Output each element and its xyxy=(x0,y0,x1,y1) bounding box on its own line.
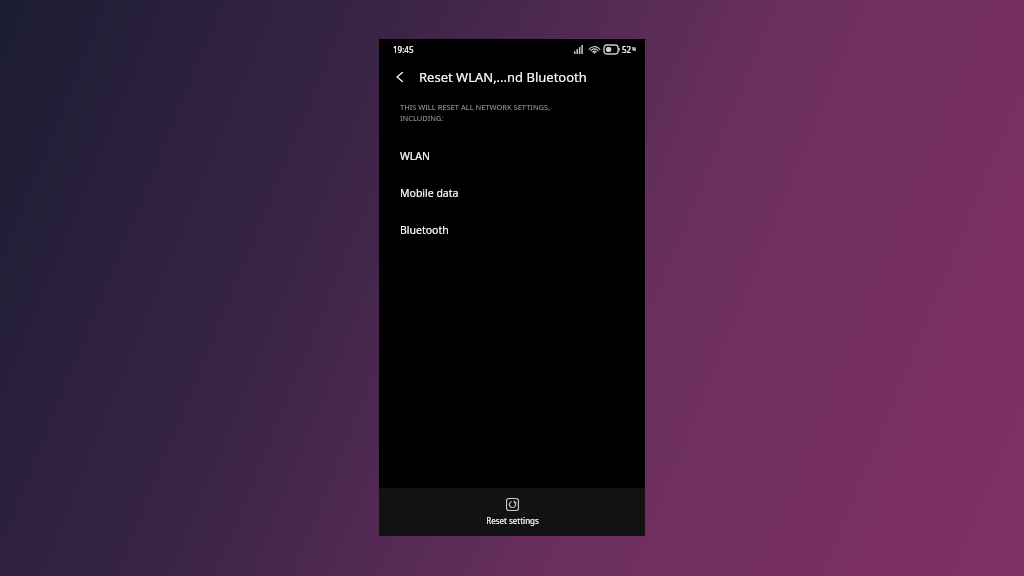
button[interactable]: Bluetooth xyxy=(379,211,645,248)
staticText: Bluetooth xyxy=(400,223,449,237)
staticText: THIS WILL RESET ALL NETWORK SETTINGS, IN… xyxy=(400,102,551,123)
staticText: 19:45 xyxy=(393,44,414,55)
staticText: 52 xyxy=(622,44,632,55)
staticText: Reset WLAN,...nd Bluetooth xyxy=(419,68,587,86)
staticText: Reset settings xyxy=(486,515,539,526)
button[interactable]: Back xyxy=(385,62,415,92)
staticText: % xyxy=(632,46,637,53)
button[interactable]: WLAN xyxy=(379,137,645,174)
button[interactable]: Mobile data xyxy=(379,174,645,211)
staticText: WLAN xyxy=(400,149,430,163)
button[interactable]: Reset settings xyxy=(379,498,645,526)
staticText: Mobile data xyxy=(400,186,459,200)
